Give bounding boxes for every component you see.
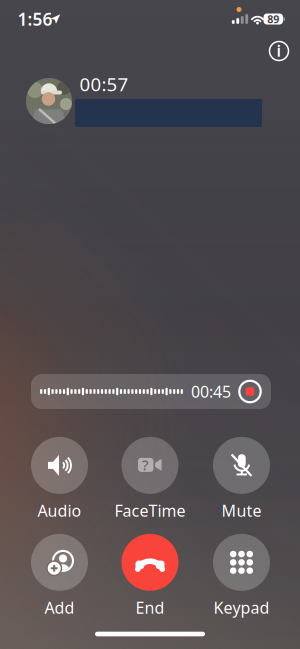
button[interactable]: ? — [106, 439, 194, 519]
staticText: Keypad — [213, 597, 269, 618]
staticText: Add — [44, 597, 74, 618]
staticText: 00:57 — [79, 72, 128, 96]
staticText: FaceTime — [114, 500, 185, 521]
staticText: 00:45 — [191, 381, 231, 402]
button[interactable]: Mute — [197, 439, 285, 519]
staticText: ? — [142, 455, 149, 474]
staticText: Audio — [37, 500, 81, 521]
staticText: 89 — [267, 12, 279, 26]
staticText: 1:56 — [17, 7, 52, 30]
button[interactable]: Keypad — [197, 536, 285, 616]
staticText: Mute — [221, 500, 261, 521]
button[interactable]: Audio — [15, 439, 103, 519]
staticText: i — [276, 40, 281, 61]
button[interactable]: End — [106, 536, 194, 616]
staticText: End — [135, 597, 164, 618]
button[interactable]: Add — [15, 536, 103, 616]
button[interactable]: Call details — [265, 37, 293, 65]
